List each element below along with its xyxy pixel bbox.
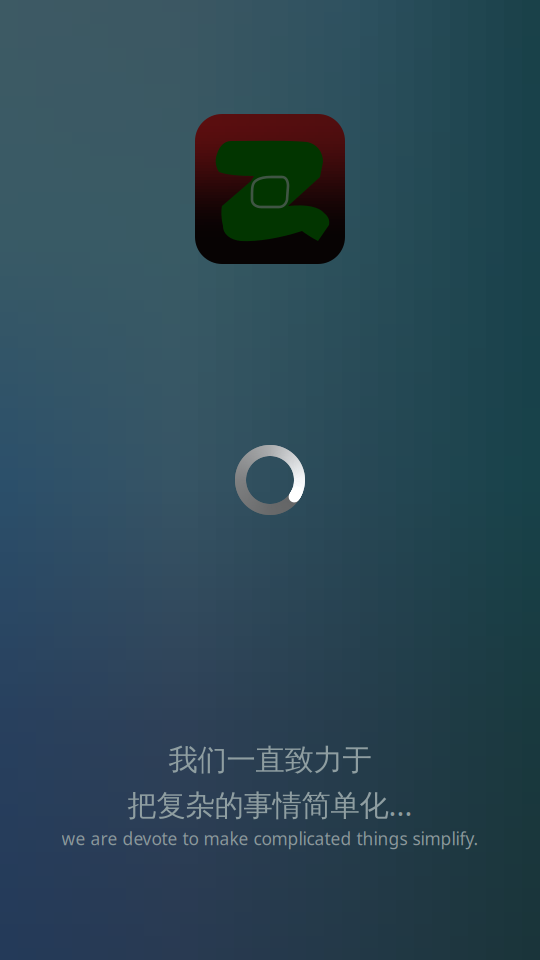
staticText: 把复杂的事情简单化... [127,785,412,824]
staticText: we are devote to make complicated things… [61,827,478,850]
staticText: 我们一直致力于 [168,742,371,778]
